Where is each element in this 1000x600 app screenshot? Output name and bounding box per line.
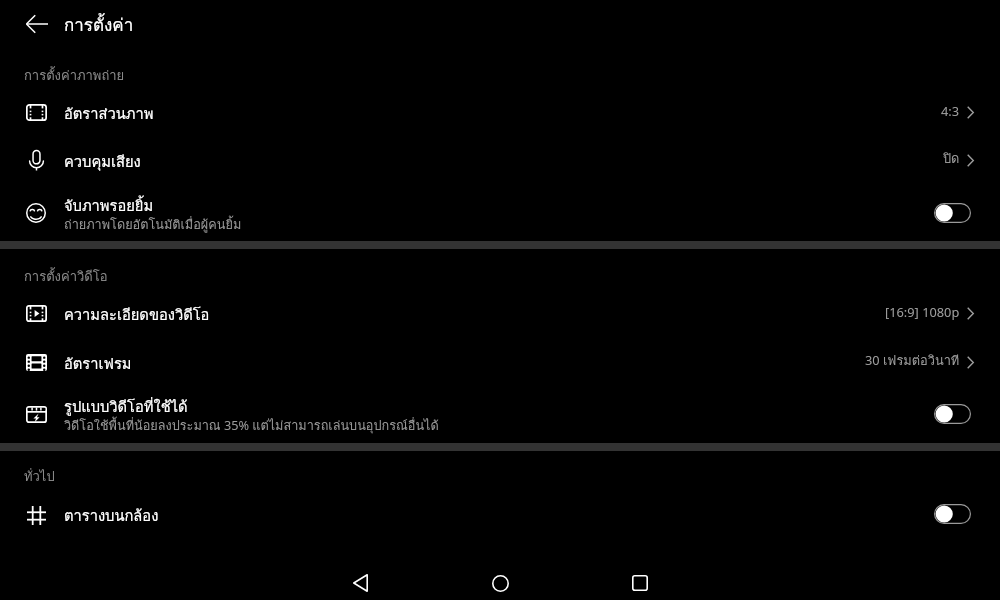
staticText: ปิด [943, 148, 960, 168]
button[interactable]: รูปแบบวิดีโอที่ใช้ได้ [0, 386, 1000, 442]
staticText: ความละเอียดของวิดีโอ [64, 303, 210, 326]
button[interactable]: Back [17, 4, 57, 44]
button[interactable]: อัตราส่วนภาพ [0, 88, 1000, 136]
button[interactable]: Recent apps [616, 559, 664, 600]
staticText: 4:3 [941, 102, 960, 119]
staticText: อัตราเฟรม [64, 352, 132, 375]
staticText: ทั่วไป [24, 466, 55, 487]
button[interactable]: ความละเอียดของวิดีโอ [0, 289, 1000, 337]
button[interactable]: ตารางบนกล้อง [0, 490, 1000, 538]
button[interactable]: Home [476, 559, 524, 600]
button[interactable]: ควบคุมเสียง [0, 136, 1000, 184]
button[interactable]: Toggle ตารางบนกล้อง [934, 504, 971, 524]
staticText: รูปแบบวิดีโอที่ใช้ได้ [64, 395, 188, 418]
button[interactable]: Toggle รูปแบบวิดีโอที่ใช้ได้ [934, 404, 971, 424]
staticText: จับภาพรอยยิ้ม [64, 194, 154, 217]
staticText: 30 เฟรมต่อวินาที [865, 350, 960, 370]
staticText: ถ่ายภาพโดยอัตโนมัติเมื่อผู้คนยิ้ม [64, 214, 242, 234]
staticText: การตั้งค่าวิดีโอ [24, 266, 108, 287]
button[interactable]: จับภาพรอยยิ้ม [0, 185, 1000, 241]
staticText: อัตราส่วนภาพ [64, 102, 154, 125]
button[interactable]: Back [336, 559, 384, 600]
button[interactable]: Toggle จับภาพรอยยิ้ม [934, 203, 971, 223]
staticText: ตารางบนกล้อง [64, 504, 159, 527]
button[interactable]: อัตราเฟรม [0, 338, 1000, 386]
staticText: การตั้งค่าภาพถ่าย [24, 65, 125, 86]
staticText: การตั้งค่า [64, 11, 134, 38]
staticText: [16:9] 1080p [885, 303, 960, 320]
staticText: ควบคุมเสียง [64, 150, 141, 173]
staticText: วิดีโอใช้พื้นที่น้อยลงประมาณ 35% แต่ไม่ส… [64, 415, 439, 435]
